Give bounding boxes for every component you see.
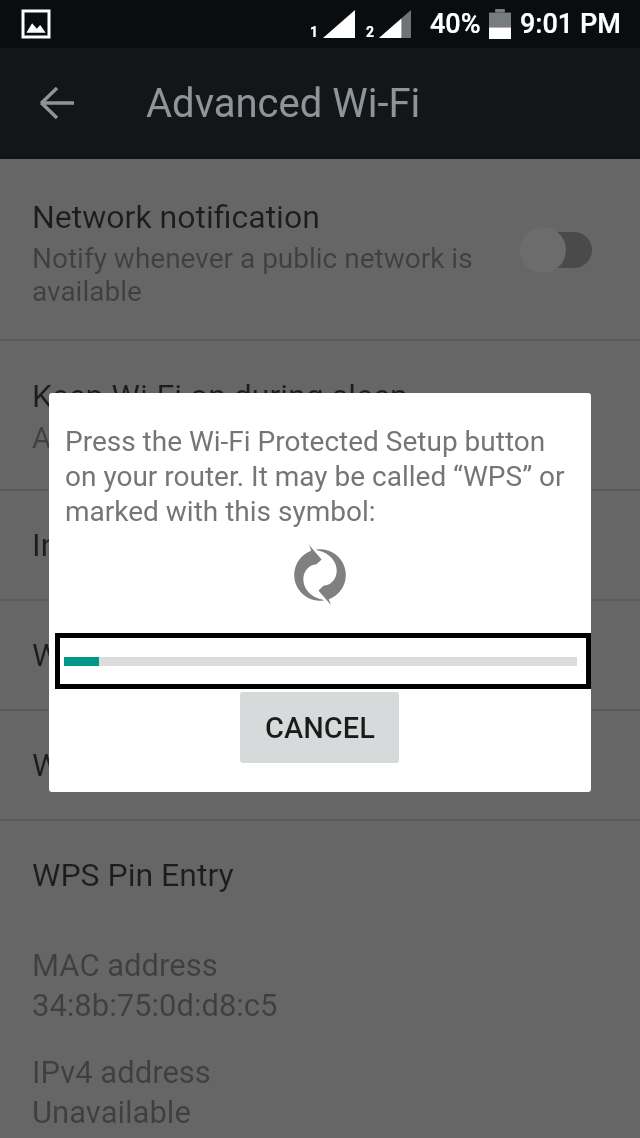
staticText: WPS Pin Entry <box>32 856 234 894</box>
staticText: CANCEL <box>265 711 375 745</box>
button[interactable]: Wi-Fi Direct <box>0 600 640 709</box>
staticText: 9:01 PM <box>520 8 621 40</box>
staticText: MAC address 34:8b:75:0d:d8:c5 <box>32 947 278 1023</box>
staticText: WPS Push Button <box>32 746 282 784</box>
staticText: Advanced Wi-Fi <box>146 80 421 127</box>
staticText: 1 <box>310 24 319 40</box>
button[interactable]: Keep Wi-Fi on during sleep <box>0 340 640 489</box>
staticText: Wi-Fi Direct <box>32 636 194 674</box>
staticText: 2 <box>366 24 375 40</box>
button[interactable]: Back <box>22 68 92 138</box>
button[interactable]: Install certificates <box>0 490 640 599</box>
staticText: Install certificates <box>32 526 286 564</box>
staticText: Network notification <box>32 198 320 236</box>
button[interactable]: WPS Push Button <box>0 710 640 819</box>
staticText: Keep Wi-Fi on during sleep <box>32 377 408 415</box>
staticText: IPv4 address Unavailable <box>32 1054 211 1130</box>
staticText: Press the Wi-Fi Protected Setup button o… <box>65 425 565 528</box>
button[interactable]: Network notification <box>0 160 640 339</box>
staticText: 40% <box>430 8 481 40</box>
staticText: Notify whenever a public network is avai… <box>32 242 484 308</box>
button[interactable]: CANCEL <box>240 692 399 763</box>
staticText: Always <box>32 421 125 455</box>
button[interactable]: WPS Pin Entry <box>0 820 640 929</box>
